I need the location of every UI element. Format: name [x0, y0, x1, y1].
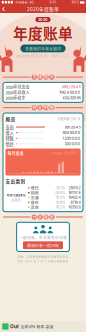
staticText: 居住 — [31, 199, 39, 205]
staticText: 享 — [38, 214, 42, 220]
staticText: 况 — [50, 74, 54, 80]
staticText: 查看我的年度关键词 — [25, 46, 61, 51]
staticText: 10422.4 — [69, 195, 81, 200]
staticText: 月均支出 ¥5,676.7 — [52, 151, 79, 155]
staticText: 8719.4 — [71, 200, 81, 204]
staticText: 购物 — [31, 190, 39, 195]
staticText: 15.2% — [56, 205, 66, 209]
staticText: 支 — [38, 105, 42, 111]
staticText: ¥68,120.45 — [62, 84, 81, 89]
staticText: ●●●● 中国移动 4G — [2, 1, 34, 4]
staticText: 收 — [32, 105, 36, 111]
staticText: 说明：年度账单数据统计范围为您在本 — [17, 254, 68, 259]
staticText: 2020年总收入 — [5, 89, 29, 95]
staticText: ¥92,450.00 — [60, 90, 81, 95]
staticText: 概览 — [5, 115, 15, 122]
staticText: 全新VPN 畅享 高速 — [20, 324, 53, 329]
staticText: ¥24,329.55 — [63, 95, 81, 100]
staticText: 2020年总支出 — [5, 84, 29, 90]
staticText: 分 — [32, 214, 36, 220]
staticText: 100% — [71, 1, 79, 4]
staticText: 转账 — [5, 135, 13, 141]
staticText: 9:41 — [49, 1, 55, 4]
staticText: 15.3% — [56, 195, 66, 200]
staticText: 单 — [50, 214, 54, 220]
staticText: 2020 — [38, 17, 48, 22]
button[interactable]: 邀请好友一起记账 — [23, 241, 63, 249]
staticText: 记账天数 286 天 — [58, 117, 81, 121]
staticText: 借还 — [5, 141, 13, 147]
staticText: 12.8% — [56, 200, 66, 204]
staticText: 总支出 — [11, 198, 20, 202]
staticText: 32.1% — [56, 186, 66, 190]
staticText: 统计时间 2020.01.01 - 2020.12.31 — [17, 54, 69, 58]
staticText: 24.6% — [55, 190, 66, 195]
staticText: 68120.45 — [7, 193, 25, 198]
staticText: 餐饮 — [31, 185, 39, 191]
staticText: 92450.00 — [63, 130, 81, 135]
staticText: 总 — [32, 74, 36, 80]
staticText: 情 — [44, 74, 48, 80]
staticText: 明 — [44, 105, 48, 111]
staticText: 年度账单 — [13, 22, 73, 43]
staticText: 每月支出 — [7, 151, 23, 156]
staticText: 2020年度账单 — [27, 5, 59, 12]
staticText: 细 — [50, 105, 54, 111]
button[interactable]: Back — [0, 5, 7, 13]
button[interactable]: 查看我的年度关键词 — [20, 45, 66, 52]
staticText: 12300.00 — [63, 136, 81, 141]
staticText: 支出 — [5, 124, 13, 130]
staticText: 21870.2 — [69, 186, 81, 190]
staticText: 10350.9 — [69, 205, 81, 209]
staticText: 支出类别 — [5, 178, 25, 184]
staticText: 2020年结余 — [5, 95, 25, 101]
staticText: 账 — [44, 214, 48, 220]
staticText: 68120.45 — [65, 125, 81, 129]
staticText: 体 — [38, 74, 42, 80]
button[interactable]: Out — [0, 321, 86, 332]
staticText: App 2020 年 1 月 1 日起记录的账目 — [17, 259, 68, 263]
staticText: 其他 — [31, 204, 39, 210]
staticText: 邀请好友一起记账 — [27, 242, 59, 248]
staticText: 交通 — [31, 195, 39, 200]
staticText: 16757.6 — [69, 190, 81, 195]
staticText: 收入 — [5, 130, 13, 136]
staticText: 一起记账，生活更有仪式感 — [19, 235, 67, 240]
staticText: Out — [10, 324, 19, 329]
staticText: 3200.00 — [65, 141, 81, 146]
